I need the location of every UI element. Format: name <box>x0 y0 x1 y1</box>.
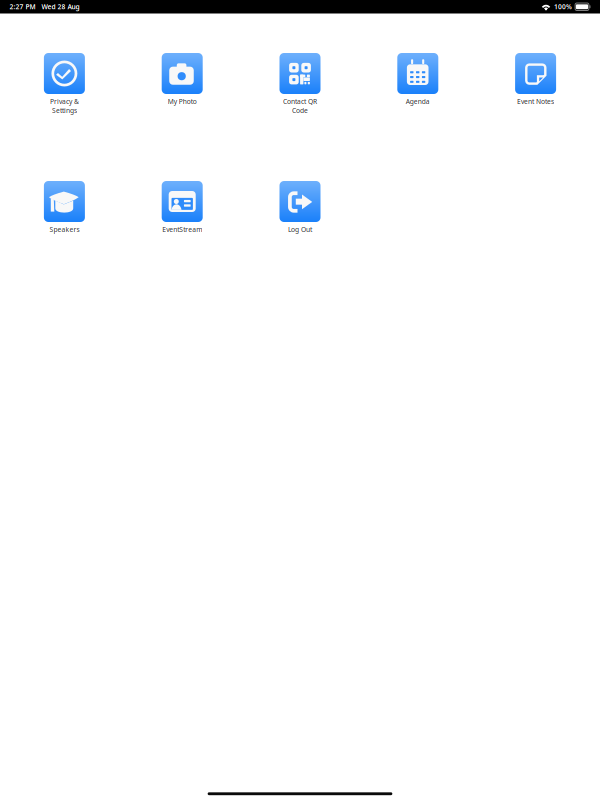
button[interactable]: Speakers <box>5 181 123 243</box>
staticText: Log Out <box>288 225 312 234</box>
staticText: 100% <box>554 2 572 11</box>
button[interactable]: Event Notes <box>477 53 594 115</box>
staticText: Wed 28 Aug <box>41 2 79 11</box>
button[interactable]: Agenda <box>359 53 477 115</box>
staticText: Event Notes <box>517 97 554 106</box>
button[interactable]: Contact QR <box>241 53 359 115</box>
staticText: Privacy & <box>50 97 79 106</box>
button[interactable]: EventStream <box>123 181 241 243</box>
button[interactable]: Log Out <box>241 181 359 243</box>
staticText: Code <box>292 106 308 115</box>
staticText: Speakers <box>49 225 79 234</box>
staticText: EventStream <box>162 225 202 234</box>
staticText: My Photo <box>168 97 197 106</box>
button[interactable]: My Photo <box>123 53 241 115</box>
button[interactable]: Privacy & <box>5 53 123 115</box>
staticText: Agenda <box>406 97 430 106</box>
staticText: Settings <box>52 106 77 115</box>
staticText: 2:27 PM <box>9 2 35 11</box>
staticText: Contact QR <box>283 97 317 106</box>
